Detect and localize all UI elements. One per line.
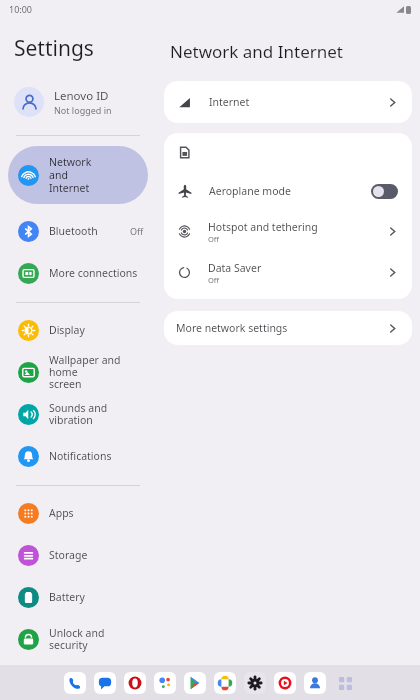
button[interactable]: App	[154, 672, 176, 694]
button[interactable]: Notifications	[0, 435, 156, 477]
staticText: Lenovo ID	[54, 88, 109, 104]
staticText: Off	[208, 275, 220, 285]
staticText: Battery	[49, 590, 144, 604]
button[interactable]: Wallpaper and home screen	[0, 351, 156, 393]
button[interactable]: Network and Internet	[8, 146, 148, 204]
button[interactable]: App	[274, 672, 296, 694]
button[interactable]: Storage	[0, 534, 156, 576]
staticText: 10:00	[9, 3, 33, 15]
staticText: Notifications	[49, 449, 144, 463]
button[interactable]: SIM cards	[164, 133, 412, 171]
staticText: More connections	[49, 266, 144, 280]
button[interactable]: All apps	[334, 672, 356, 694]
staticText: Bluetooth	[49, 224, 130, 238]
button[interactable]: App	[184, 672, 206, 694]
staticText: Apps	[49, 506, 144, 520]
button[interactable]: Apps	[0, 492, 156, 534]
staticText: Not logged in	[54, 104, 112, 116]
button[interactable]: App	[214, 672, 236, 694]
staticText: More network settings	[176, 321, 387, 335]
button[interactable]: More connections	[0, 252, 156, 294]
button[interactable]: Display	[0, 309, 156, 351]
button[interactable]: Internet	[164, 81, 412, 123]
staticText: Internet	[209, 95, 387, 109]
staticText: Data Saver	[208, 261, 262, 275]
staticText: Sounds and vibration	[49, 401, 144, 427]
button[interactable]: App	[124, 672, 146, 694]
button[interactable]: Bluetooth	[0, 210, 156, 252]
staticText: Settings	[14, 34, 94, 63]
button[interactable]: More network settings	[164, 311, 412, 345]
button[interactable]: App	[244, 672, 266, 694]
button[interactable]: App	[304, 672, 326, 694]
button[interactable]: App	[64, 672, 86, 694]
staticText: Off	[130, 225, 144, 237]
staticText: Wallpaper and home screen	[49, 353, 144, 391]
staticText: Network and Internet	[170, 40, 343, 63]
staticText: Hotspot and tethering	[208, 220, 318, 234]
button[interactable]: Battery	[0, 576, 156, 618]
button[interactable]: App	[94, 672, 116, 694]
button[interactable]: Lenovo ID	[0, 83, 156, 121]
staticText: Off	[208, 234, 220, 244]
button[interactable]: Sounds and vibration	[0, 393, 156, 435]
staticText: Unlock and security	[49, 626, 144, 652]
staticText: Storage	[49, 548, 144, 562]
staticText: Network and Internet	[49, 155, 92, 195]
staticText: Display	[49, 323, 144, 337]
button[interactable]: Unlock and security	[0, 618, 156, 660]
button[interactable]: Data Saver	[164, 252, 412, 293]
button[interactable]: Hotspot and tethering	[164, 211, 412, 252]
staticText: Aeroplane mode	[209, 184, 371, 198]
button[interactable]: Aeroplane mode	[164, 171, 412, 211]
